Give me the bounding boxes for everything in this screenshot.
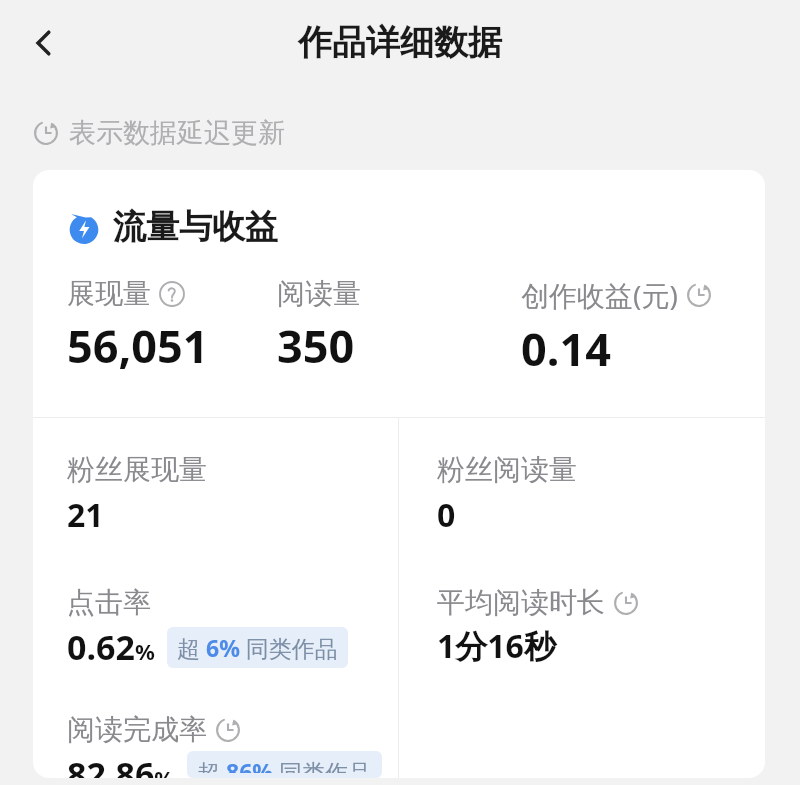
- staticText: 350: [277, 315, 355, 376]
- staticText: 21: [67, 493, 104, 537]
- staticText: 56,051: [67, 315, 209, 376]
- staticText: 流量与收益: [113, 206, 278, 248]
- button[interactable]: 阅读量: [277, 276, 521, 376]
- staticText: 粉丝阅读量: [437, 452, 577, 487]
- staticText: 82.86%: [67, 751, 175, 778]
- staticText: 展现量: [67, 276, 151, 311]
- staticText: 阅读量: [277, 276, 361, 311]
- button[interactable]: 创作收益(元): [521, 276, 765, 379]
- staticText: 0.62%: [67, 624, 155, 670]
- staticText: 超 86% 同类作品: [197, 756, 372, 773]
- staticText: 表示数据延迟更新: [69, 116, 285, 150]
- staticText: 粉丝展现量: [67, 452, 207, 487]
- staticText: 平均阅读时长: [437, 585, 605, 620]
- staticText: 0.14: [521, 318, 611, 379]
- button[interactable]: Back: [16, 15, 72, 71]
- staticText: 0: [437, 493, 456, 537]
- staticText: 点击率: [67, 585, 151, 620]
- staticText: 创作收益(元): [521, 276, 678, 314]
- staticText: 超 6% 同类作品: [177, 632, 338, 663]
- button[interactable]: 展现量: [67, 276, 277, 376]
- button[interactable]: 超 86% 同类作品: [187, 751, 382, 778]
- staticText: 1分16秒: [437, 624, 556, 668]
- staticText: 阅读完成率: [67, 712, 207, 747]
- button[interactable]: 超 6% 同类作品: [167, 627, 348, 668]
- staticText: 作品详细数据: [298, 21, 502, 64]
